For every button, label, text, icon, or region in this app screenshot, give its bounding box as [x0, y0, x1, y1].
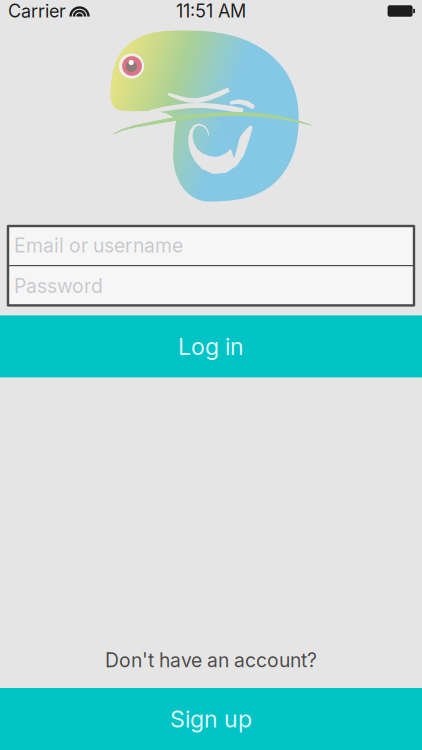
staticText: Don't have an account? — [105, 649, 317, 672]
staticText: Sign up — [170, 705, 252, 733]
staticText: Log in — [178, 332, 244, 360]
button[interactable]: Log in — [0, 315, 422, 377]
staticText: 11:51 AM — [176, 0, 246, 22]
staticText: Password — [14, 274, 103, 298]
staticText: Email or username — [14, 234, 183, 257]
button[interactable]: Sign up — [0, 688, 422, 750]
staticText: Carrier — [8, 0, 66, 22]
